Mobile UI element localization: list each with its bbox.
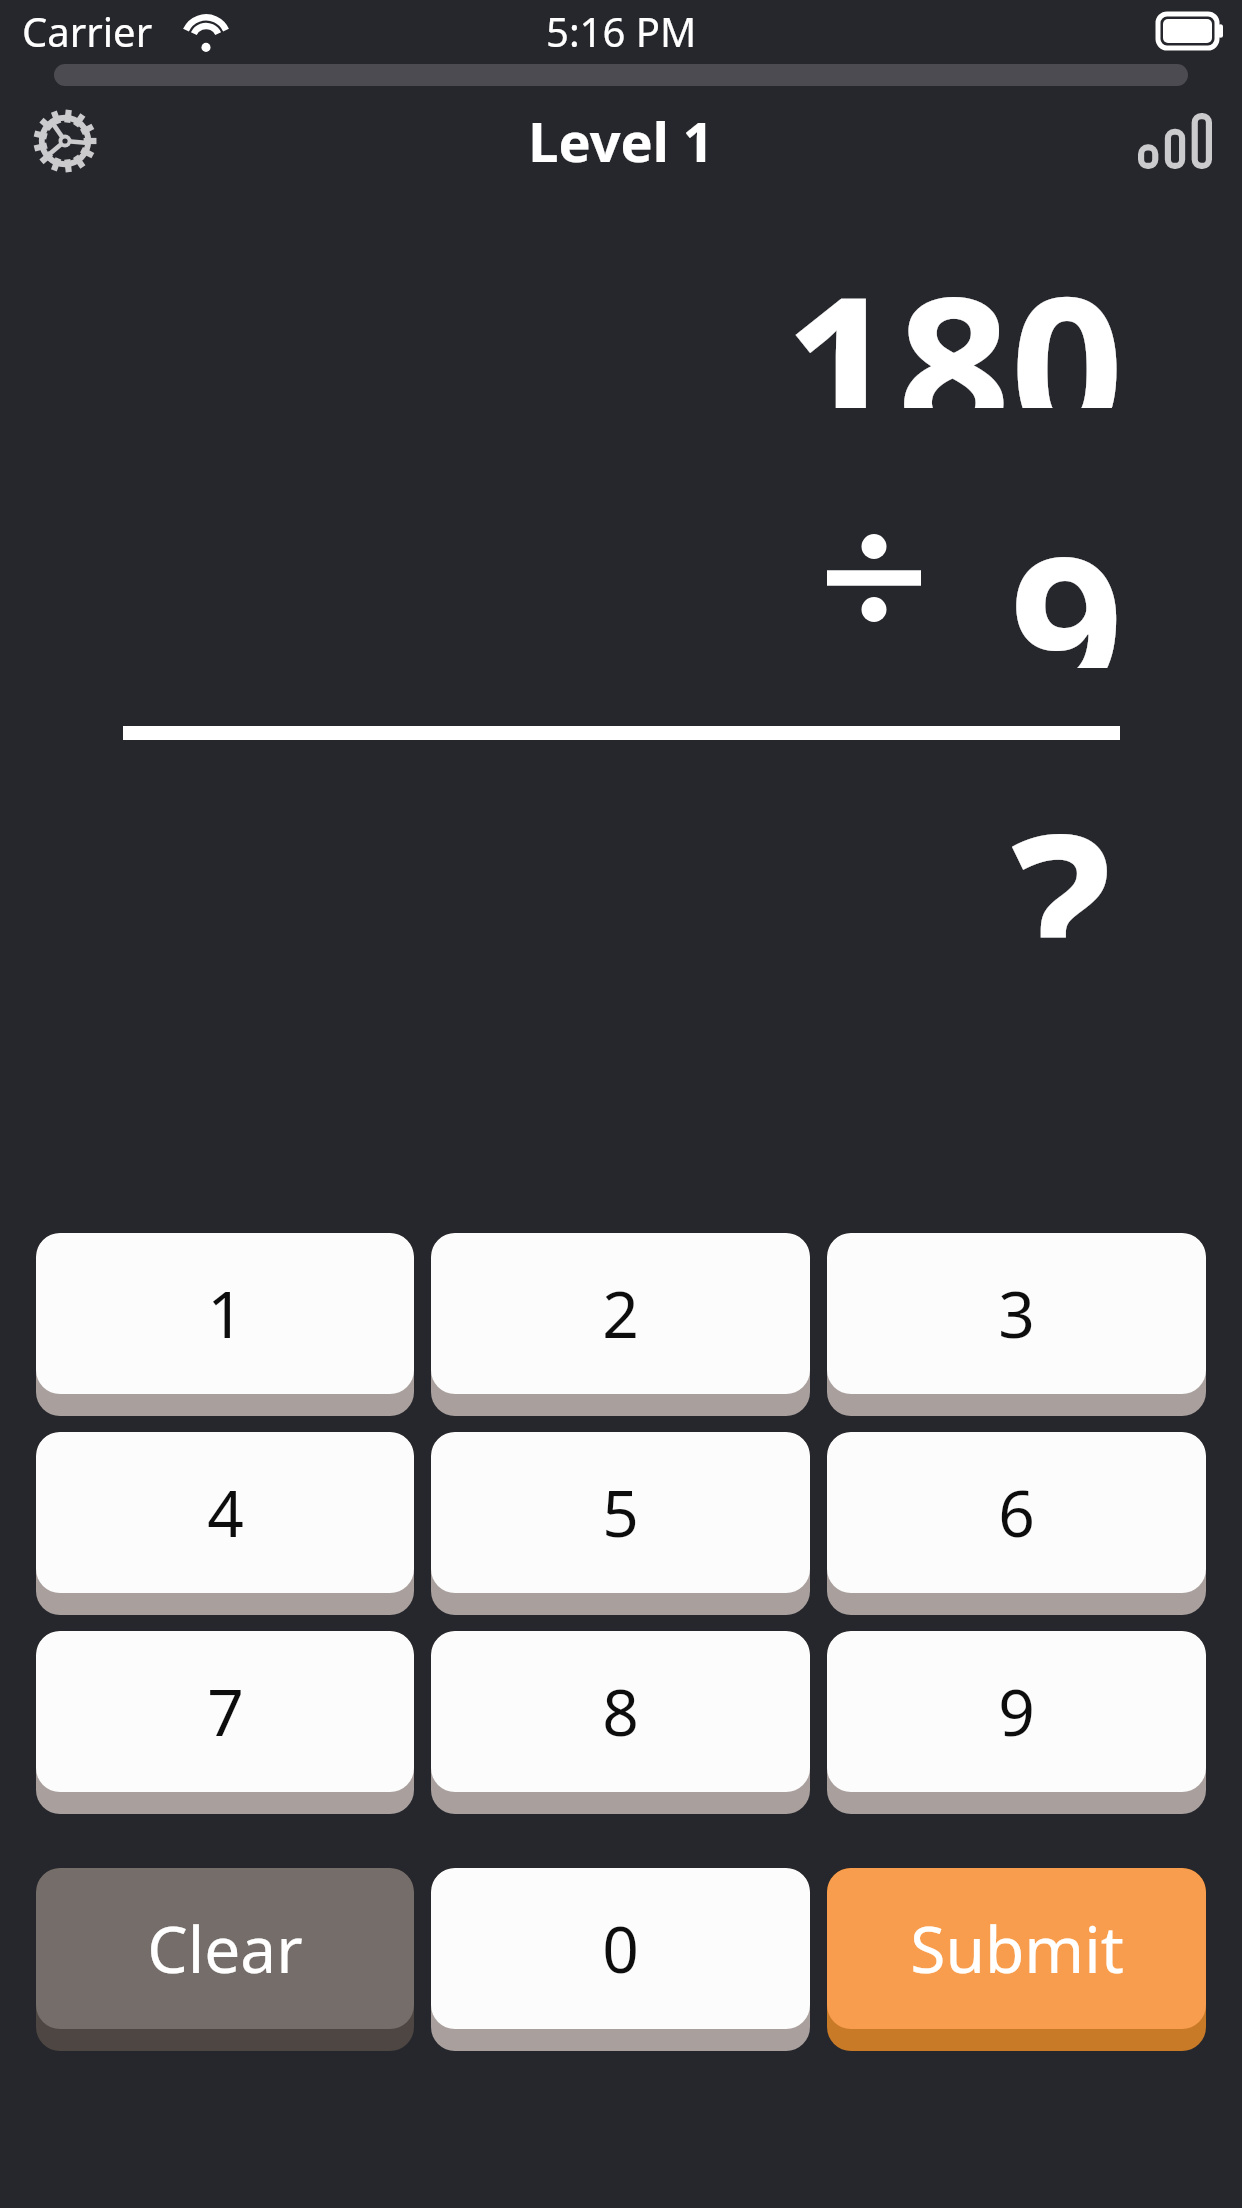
button[interactable]: Statistics	[1130, 96, 1220, 186]
button[interactable]: 9	[827, 1631, 1206, 1814]
staticText: Carrier	[22, 4, 153, 58]
staticText: Submit	[910, 1905, 1124, 1992]
button[interactable]: 6	[827, 1432, 1206, 1615]
staticText: Level 1	[528, 104, 714, 178]
button[interactable]: 2	[431, 1233, 810, 1416]
staticText: 0	[602, 1905, 639, 1992]
button[interactable]: 4	[36, 1432, 414, 1615]
staticText: 5:16 PM	[546, 4, 697, 58]
button[interactable]: Settings	[22, 98, 108, 184]
staticText: 2	[602, 1270, 639, 1357]
staticText: 6	[998, 1469, 1035, 1556]
staticText: Clear	[147, 1905, 303, 1992]
staticText: 3	[998, 1270, 1035, 1357]
button[interactable]: 0	[431, 1868, 810, 2051]
button[interactable]: 5	[431, 1432, 810, 1615]
staticText: 1	[207, 1270, 244, 1357]
button[interactable]: Clear	[36, 1868, 414, 2051]
staticText: 8	[602, 1668, 639, 1755]
staticText: 4	[207, 1469, 244, 1556]
staticText: 180	[784, 228, 1124, 408]
staticText: 5	[602, 1469, 639, 1556]
staticText: 9	[1010, 488, 1124, 668]
staticText: 7	[207, 1668, 244, 1755]
button[interactable]: 1	[36, 1233, 414, 1416]
button[interactable]: 8	[431, 1631, 810, 1814]
staticText: 9	[998, 1668, 1035, 1755]
staticText: ?	[1011, 762, 1112, 952]
button[interactable]: 7	[36, 1631, 414, 1814]
button[interactable]: Submit	[827, 1868, 1206, 2051]
button[interactable]: 3	[827, 1233, 1206, 1416]
